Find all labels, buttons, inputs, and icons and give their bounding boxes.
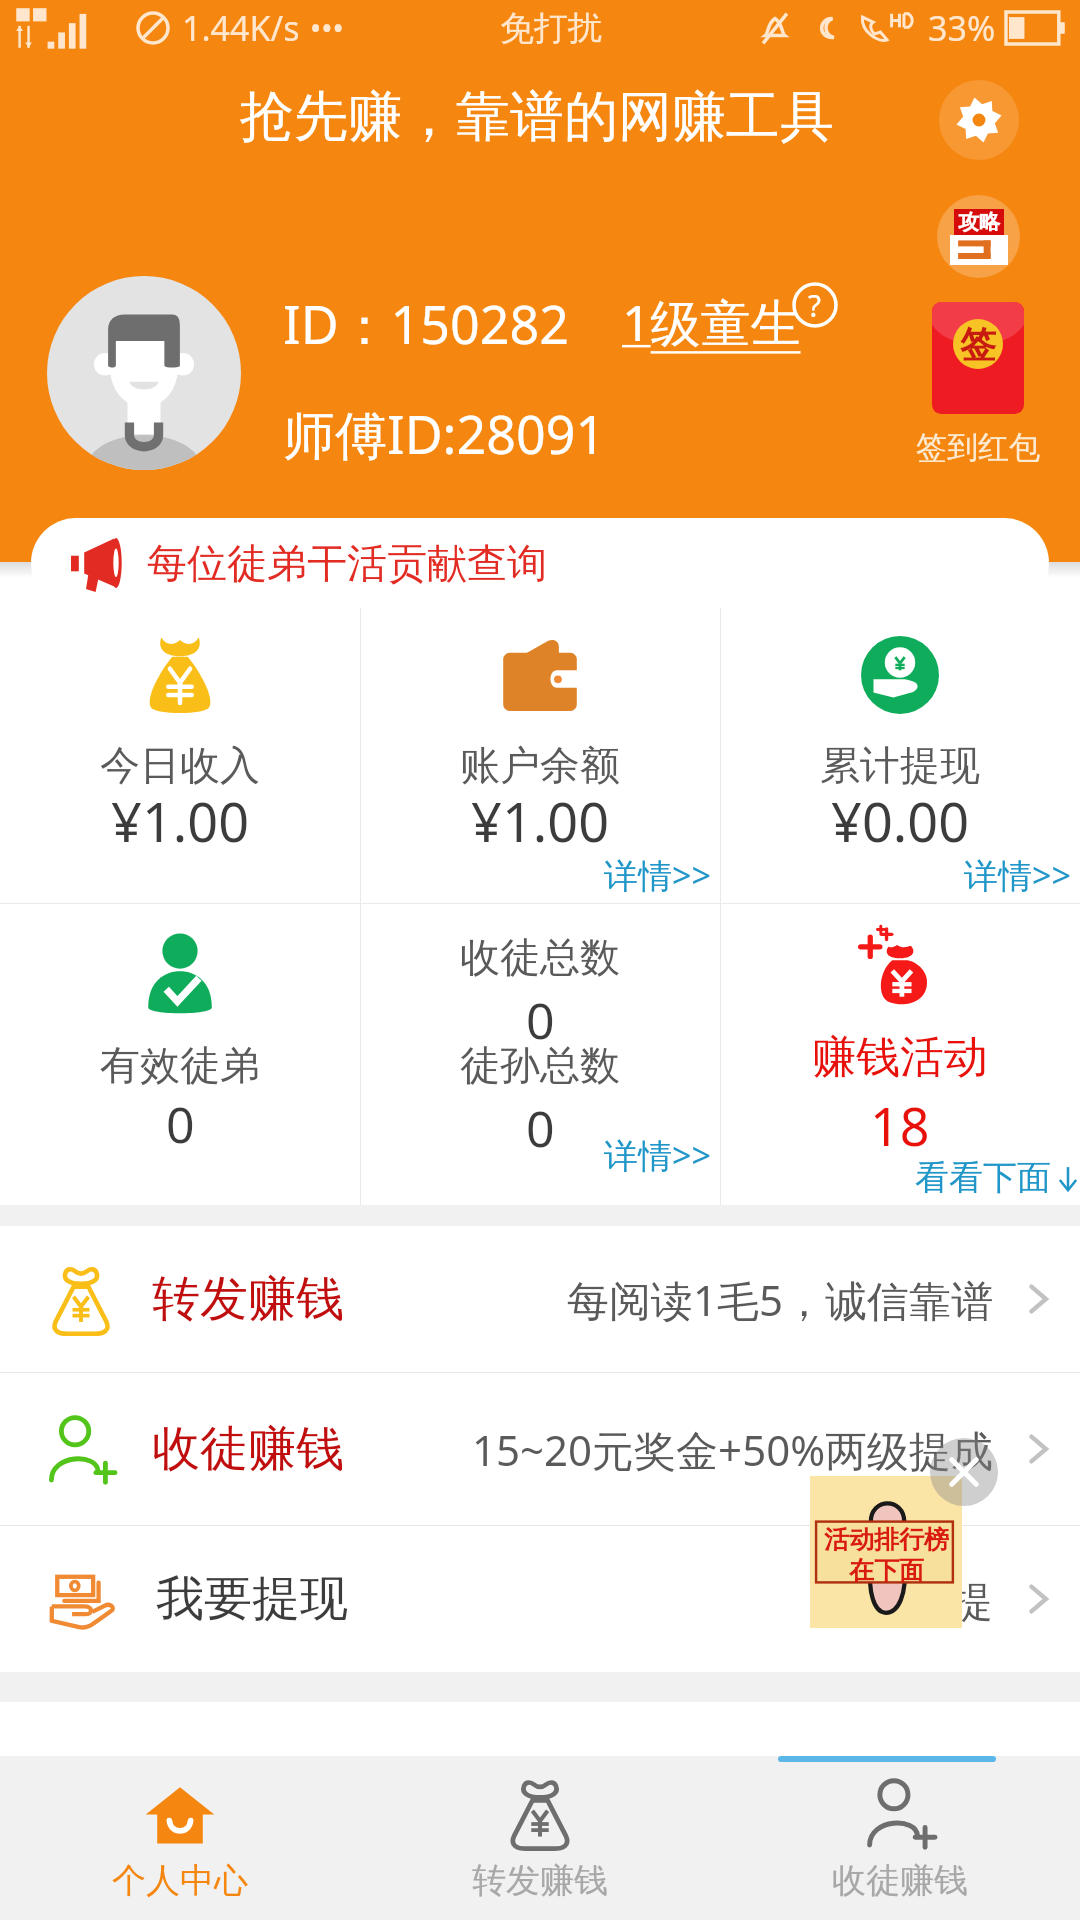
staticText: 签	[960, 322, 996, 367]
button[interactable]: 详情>>	[964, 852, 1071, 898]
staticText: ¥1.00	[471, 784, 610, 858]
staticText: 5元起提	[843, 1571, 994, 1628]
staticText: 转发赚钱	[152, 1269, 344, 1329]
button[interactable]: 累计提现	[720, 562, 1080, 903]
staticText: 今日收入	[100, 740, 260, 790]
staticText: 徒孙总数	[460, 1040, 620, 1090]
staticText: 活动排行榜	[824, 1524, 949, 1555]
button[interactable]: 转发赚钱	[0, 1226, 1080, 1372]
button[interactable]: Avatar	[47, 276, 241, 470]
button[interactable]: 账户余额	[360, 562, 720, 903]
button[interactable]: 看看下面	[915, 1156, 1080, 1199]
button[interactable]: 签	[893, 302, 1063, 467]
staticText: 账户余额	[460, 740, 620, 790]
staticText: 收徒赚钱	[832, 1859, 968, 1902]
staticText: ¥0.00	[831, 784, 970, 858]
staticText: 师傅ID:28091	[283, 398, 606, 469]
button[interactable]: 收徒总数	[360, 904, 720, 1205]
staticText: 33%	[928, 5, 996, 51]
staticText: 攻略	[958, 209, 1000, 235]
button[interactable]: Help	[792, 282, 838, 328]
button[interactable]: 每位徒弟干活贡献查询	[31, 518, 1049, 608]
button[interactable]: 收徒赚钱	[720, 1756, 1080, 1920]
staticText: 抢先赚，靠谱的网赚工具	[240, 83, 834, 151]
button[interactable]: 详情>>	[604, 852, 711, 898]
staticText: 1.44K/s	[182, 5, 300, 51]
button[interactable]: 1级童生	[622, 288, 801, 356]
staticText: 0	[526, 1094, 555, 1162]
staticText: 每阅读1毛5，诚信靠谱	[567, 1271, 994, 1328]
staticText: ¥1.00	[111, 784, 250, 858]
staticText: 0	[526, 986, 555, 1054]
staticText: ID：150282	[283, 288, 570, 359]
button[interactable]: 详情>>	[604, 1132, 711, 1178]
button[interactable]: 我要提现	[0, 1526, 1080, 1672]
staticText: 个人中心	[112, 1859, 248, 1902]
staticText: •••	[310, 8, 344, 49]
staticText: 每位徒弟干活贡献查询	[147, 538, 547, 588]
staticText: 0	[166, 1090, 195, 1158]
staticText: 累计提现	[820, 740, 980, 790]
staticText: 我要提现	[156, 1569, 348, 1629]
staticText: 在下面	[849, 1555, 924, 1586]
staticText: 转发赚钱	[472, 1859, 608, 1902]
staticText: 15~20元奖金+50%两级提成	[472, 1421, 994, 1478]
button[interactable]: 有效徒弟	[0, 904, 360, 1205]
button[interactable]: Close	[930, 1438, 998, 1506]
button[interactable]: 转发赚钱	[360, 1756, 720, 1920]
button[interactable]: 收徒赚钱	[0, 1373, 1080, 1525]
button[interactable]: 个人中心	[0, 1756, 360, 1920]
button[interactable]: 攻略	[937, 195, 1020, 278]
button[interactable]: Settings	[939, 80, 1019, 160]
staticText: 18	[870, 1090, 930, 1161]
staticText: 签到红包	[916, 428, 1040, 467]
staticText: 有效徒弟	[100, 1040, 260, 1090]
button[interactable]: 今日收入	[0, 562, 360, 903]
staticText: ?	[808, 285, 822, 326]
staticText: 看看下面	[915, 1156, 1051, 1199]
staticText: 收徒总数	[460, 932, 620, 982]
button[interactable]: 活动排行榜在下面	[810, 1476, 962, 1628]
staticText: 免打扰	[500, 7, 602, 50]
button[interactable]: 赚钱活动	[720, 904, 1080, 1205]
staticText: 收徒赚钱	[152, 1419, 344, 1479]
staticText: 赚钱活动	[812, 1030, 988, 1085]
